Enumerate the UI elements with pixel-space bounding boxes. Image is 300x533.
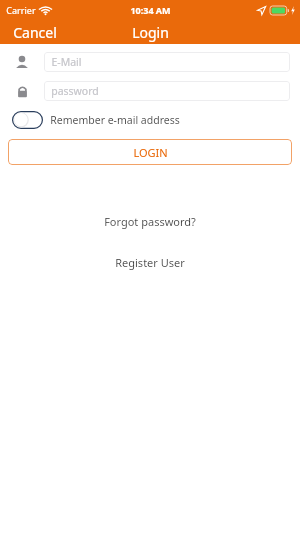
staticText: Login: [132, 23, 169, 42]
staticText: Register User: [115, 255, 185, 270]
button[interactable]: password: [44, 81, 290, 101]
staticText: Carrier: [6, 4, 36, 16]
staticText: 10:34 AM: [130, 4, 171, 16]
button[interactable]: Register User: [0, 252, 300, 273]
button[interactable]: Remember e-mail address toggle: [12, 111, 43, 129]
staticText: password: [51, 84, 99, 98]
staticText: Remember e-mail address: [50, 113, 180, 127]
button[interactable]: E-Mail: [44, 52, 290, 72]
staticText: E-Mail: [51, 55, 82, 69]
staticText: Cancel: [13, 23, 57, 42]
button[interactable]: Forgot password?: [0, 211, 300, 232]
staticText: Forgot password?: [104, 214, 196, 229]
staticText: LOGIN: [133, 145, 168, 160]
button[interactable]: LOGIN: [8, 139, 292, 165]
button[interactable]: Cancel: [0, 21, 70, 44]
